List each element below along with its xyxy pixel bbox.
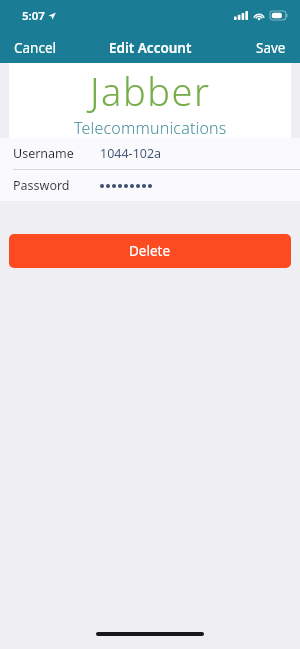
button[interactable]: Delete bbox=[9, 234, 291, 268]
staticText: Save bbox=[256, 39, 286, 57]
staticText: Delete bbox=[129, 242, 171, 260]
staticText: Cancel bbox=[14, 39, 57, 57]
button[interactable]: Username bbox=[0, 138, 300, 169]
button[interactable]: Password bbox=[0, 170, 300, 201]
staticText: 5:07 bbox=[22, 8, 45, 24]
staticText: Telecommunications bbox=[74, 117, 227, 139]
staticText: Edit Account bbox=[109, 39, 192, 57]
staticText: 1044-102a bbox=[100, 145, 162, 162]
staticText: Password bbox=[13, 177, 70, 194]
staticText: Username bbox=[13, 145, 74, 162]
button[interactable]: Cancel bbox=[0, 34, 71, 62]
staticText: Jabber bbox=[90, 65, 211, 117]
button[interactable]: Save bbox=[242, 34, 300, 62]
